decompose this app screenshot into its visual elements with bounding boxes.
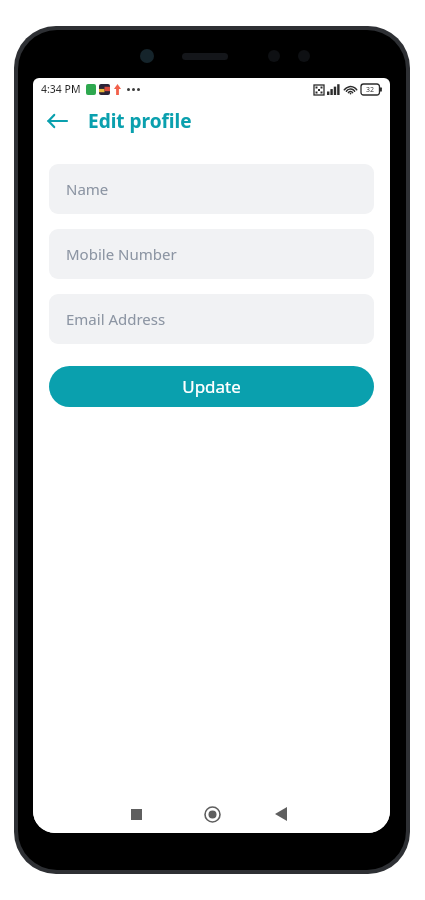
button[interactable]: Update <box>49 366 374 407</box>
button[interactable]: Back <box>266 799 296 829</box>
button[interactable]: Email Address <box>49 294 374 344</box>
staticText: Name <box>66 179 109 199</box>
button[interactable]: Home <box>197 799 227 829</box>
button[interactable]: Name <box>49 164 374 214</box>
staticText: Mobile Number <box>66 244 177 264</box>
button[interactable]: Back <box>37 101 77 141</box>
staticText: Update <box>182 375 241 398</box>
button[interactable]: Recent apps <box>121 799 151 829</box>
staticText: 4:34 PM <box>41 82 81 96</box>
button[interactable]: Mobile Number <box>49 229 374 279</box>
staticText: Email Address <box>66 309 166 329</box>
staticText: Edit profile <box>88 108 192 134</box>
staticText: 32 <box>366 85 375 95</box>
